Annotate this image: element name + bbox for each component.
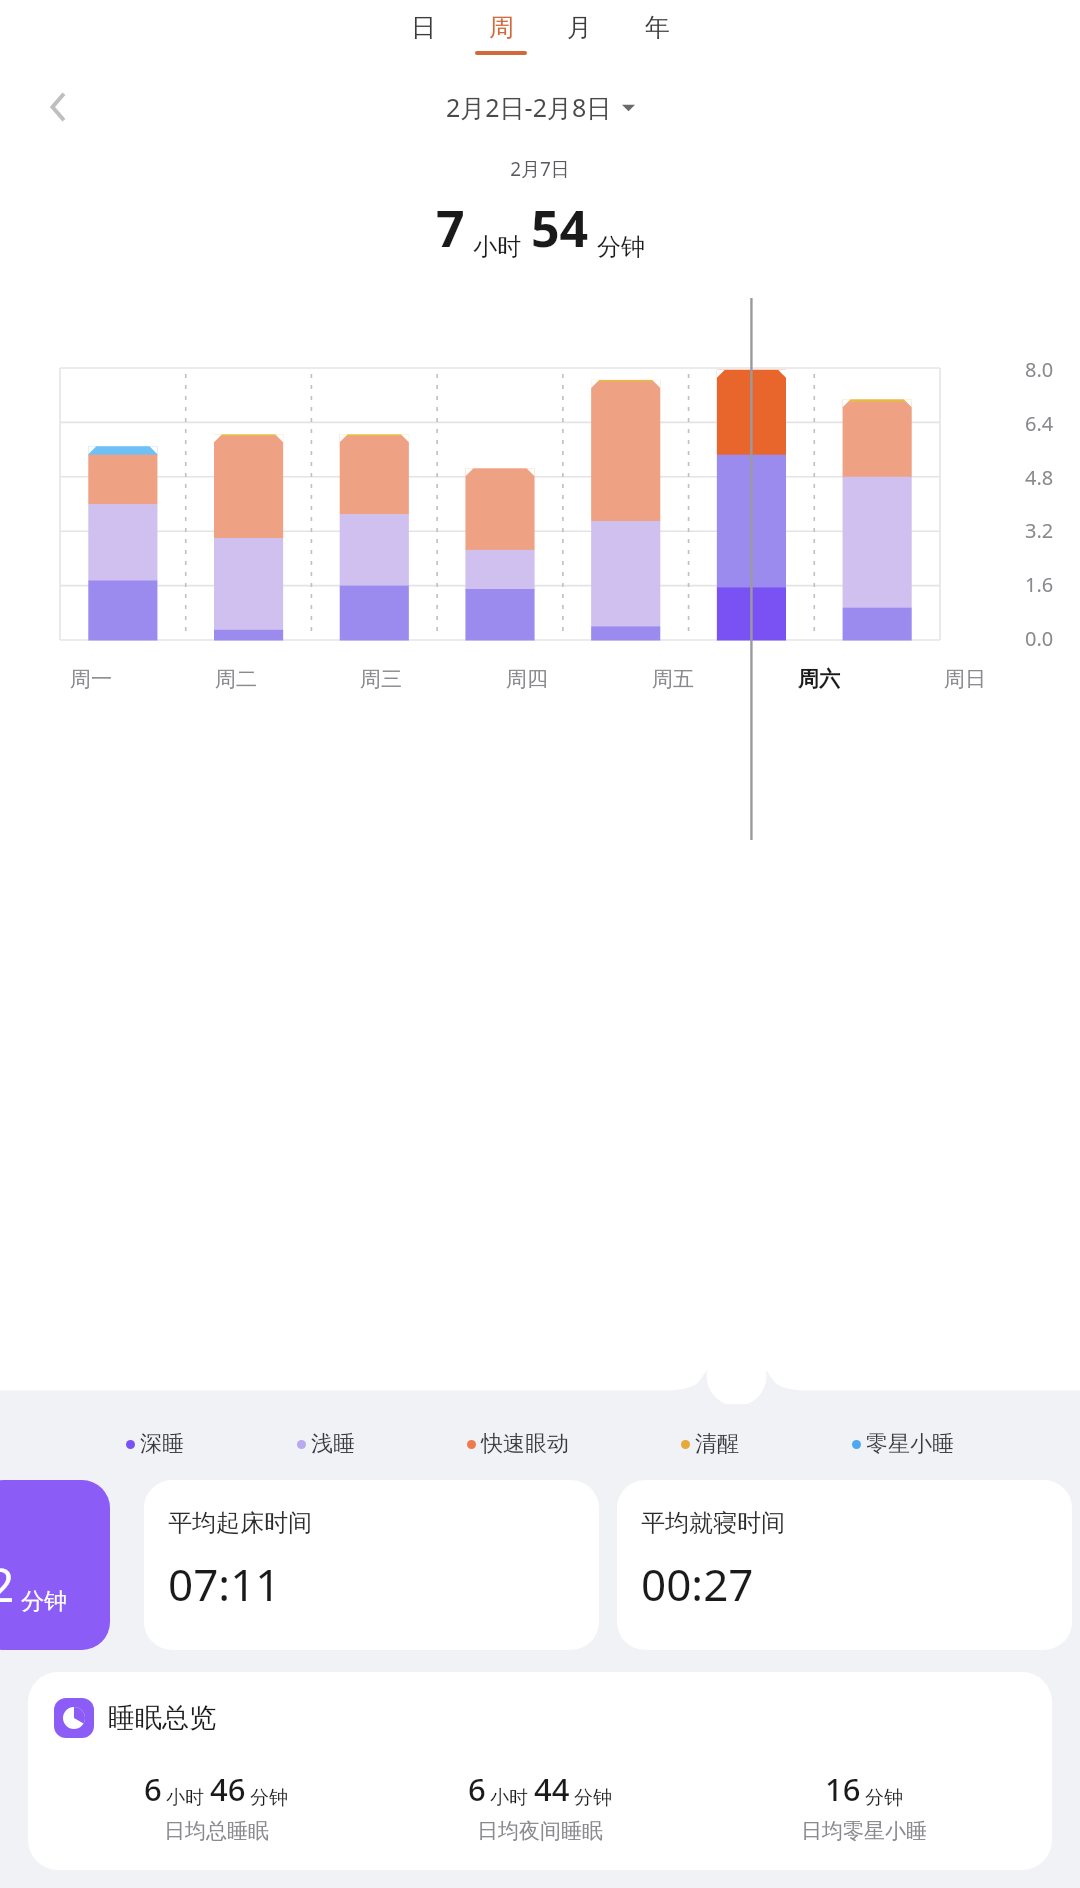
staticText: 16 — [825, 1768, 861, 1810]
staticText: 7 — [436, 194, 465, 262]
button[interactable]: 平均起床时间 — [144, 1480, 599, 1650]
staticText: 小时 — [473, 232, 521, 262]
staticText: 浅睡 — [311, 1430, 355, 1458]
staticText: 分钟 — [597, 232, 645, 262]
staticText: 44 — [534, 1768, 570, 1810]
staticText: 日均夜间睡眠 — [477, 1818, 603, 1844]
staticText: 周日 — [944, 666, 986, 692]
staticText: 分钟 — [250, 1786, 288, 1810]
staticText: 6 — [468, 1768, 486, 1810]
staticText: 周四 — [506, 666, 548, 692]
button[interactable]: 年 — [618, 0, 696, 62]
staticText: 零星小睡 — [866, 1430, 954, 1458]
staticText: 54 — [531, 194, 589, 262]
staticText: 1.6 — [1025, 571, 1054, 598]
staticText: 0.0 — [1025, 625, 1054, 652]
button[interactable]: 月 — [540, 0, 618, 62]
staticText: 4.8 — [1025, 464, 1054, 491]
staticText: 周一 — [70, 666, 112, 692]
staticText: 日均零星小睡 — [801, 1818, 927, 1844]
staticText: 周 — [489, 12, 514, 43]
staticText: 2 — [0, 1553, 15, 1616]
staticText: 小时 — [490, 1786, 528, 1810]
button[interactable]: 睡眠总览 — [28, 1672, 1052, 1870]
staticText: 年 — [645, 12, 670, 43]
staticText: 6.4 — [1025, 410, 1054, 437]
button[interactable]: 日 — [384, 0, 462, 62]
staticText: 2月7日 — [0, 156, 1080, 182]
button[interactable]: 2 — [0, 1480, 110, 1650]
button[interactable]: 深睡 — [126, 1430, 184, 1458]
button[interactable]: 快速眼动 — [467, 1430, 569, 1458]
staticText: 00:27 — [641, 1554, 754, 1614]
staticText: 日均总睡眠 — [164, 1818, 269, 1844]
staticText: 平均就寝时间 — [641, 1508, 785, 1538]
button[interactable]: 浅睡 — [297, 1430, 355, 1458]
staticText: 分钟 — [865, 1786, 903, 1810]
staticText: 周二 — [215, 666, 257, 692]
button[interactable]: 周 — [462, 0, 540, 62]
staticText: 2月2日-2月8日 — [446, 90, 612, 124]
staticText: 分钟 — [574, 1786, 612, 1810]
staticText: 小时 — [166, 1786, 204, 1810]
staticText: 分钟 — [21, 1587, 67, 1616]
staticText: 07:11 — [168, 1554, 281, 1614]
button[interactable]: 清醒 — [681, 1430, 739, 1458]
staticText: 8.0 — [1025, 356, 1054, 383]
staticText: 周三 — [360, 666, 402, 692]
staticText: 快速眼动 — [481, 1430, 569, 1458]
button[interactable]: 2月2日-2月8日 — [446, 90, 635, 124]
staticText: 6 — [144, 1768, 162, 1810]
staticText: 周六 — [798, 666, 840, 692]
staticText: 日 — [411, 12, 436, 43]
staticText: 月 — [567, 12, 592, 43]
button[interactable]: 零星小睡 — [852, 1430, 954, 1458]
button[interactable]: 平均就寝时间 — [617, 1480, 1072, 1650]
staticText: 平均起床时间 — [168, 1508, 312, 1538]
staticText: 深睡 — [140, 1430, 184, 1458]
staticText: 睡眠总览 — [108, 1701, 216, 1735]
staticText: 3.2 — [1025, 517, 1054, 544]
button[interactable]: Back — [34, 85, 78, 129]
staticText: 清醒 — [695, 1430, 739, 1458]
staticText: 46 — [210, 1768, 246, 1810]
staticText: 周五 — [652, 666, 694, 692]
